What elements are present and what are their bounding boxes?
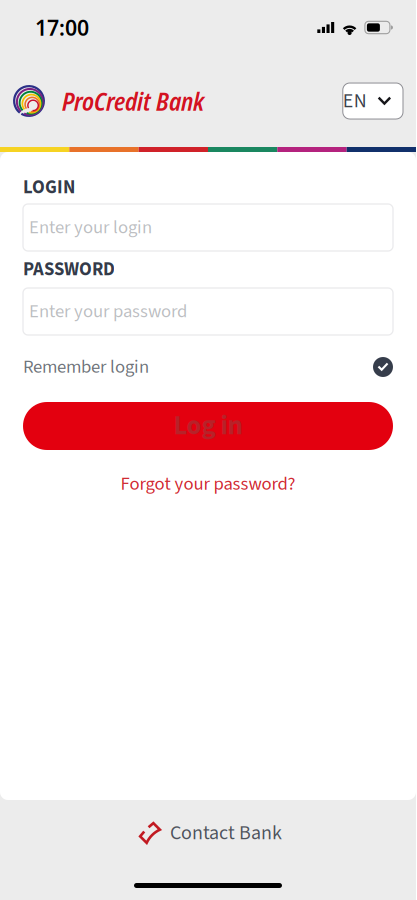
staticText: LOGIN [23,174,75,201]
button[interactable]: Log in [23,402,393,450]
staticText: Remember login [23,354,149,380]
button[interactable]: Enter your password [23,288,393,335]
staticText: 17:00 [35,13,89,42]
staticText: Contact Bank [170,819,282,847]
button[interactable]: Contact Bank [0,800,416,866]
staticText: ProCredit Bank [62,84,204,118]
staticText: Enter your login [29,214,152,241]
staticText: Forgot your password? [120,471,295,497]
staticText: Log in [173,407,242,445]
staticText: Enter your password [29,298,187,325]
button[interactable]: Forgot your password? [120,473,295,495]
button[interactable]: EN [343,83,403,119]
staticText: PASSWORD [23,256,115,283]
staticText: EN [343,87,367,115]
button[interactable]: Enter your login [23,204,393,251]
button[interactable]: Remember login [23,351,393,383]
